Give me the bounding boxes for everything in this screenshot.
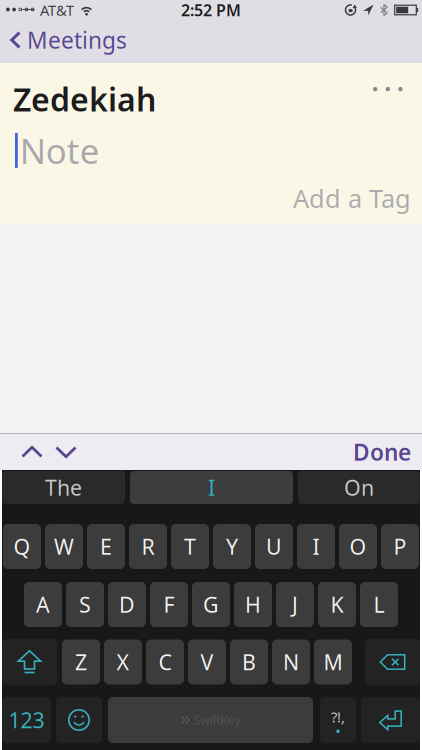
staticText: G (203, 590, 219, 619)
button[interactable]: I (130, 471, 293, 504)
button[interactable]: R (129, 524, 167, 569)
button[interactable]: J (276, 582, 314, 627)
button[interactable]: Delete (365, 639, 420, 685)
staticText: Note (20, 127, 100, 173)
button[interactable]: Y (213, 524, 251, 569)
staticText: 123 (8, 706, 44, 734)
staticText: The (45, 473, 82, 502)
button[interactable]: Done (353, 437, 422, 467)
staticText: T (184, 532, 196, 561)
button[interactable]: S (66, 582, 104, 627)
button[interactable]: C (146, 639, 184, 684)
button[interactable]: Next field (44, 445, 78, 458)
button[interactable]: Return (361, 697, 420, 743)
button[interactable]: B (230, 639, 268, 684)
staticText: I (208, 473, 215, 502)
button[interactable]: W (45, 524, 83, 569)
button[interactable]: O (339, 524, 377, 569)
staticText: E (100, 532, 112, 561)
staticText: Q (13, 532, 30, 561)
button[interactable]: T (171, 524, 209, 569)
staticText: D (119, 590, 135, 619)
button[interactable]: V (188, 639, 226, 684)
staticText: J (292, 590, 298, 619)
staticText: On (344, 473, 374, 502)
button[interactable]: H (234, 582, 272, 627)
button[interactable]: G (192, 582, 230, 627)
staticText: R (141, 532, 154, 561)
button[interactable]: Meetings (0, 25, 127, 58)
button[interactable]: X (104, 639, 142, 684)
staticText: H (245, 590, 261, 619)
staticText: P (393, 532, 406, 561)
staticText: Meetings (27, 25, 127, 55)
staticText: N (283, 648, 299, 676)
button[interactable]: A (24, 582, 62, 627)
staticText: AT&T (40, 0, 74, 20)
staticText: M (323, 648, 342, 676)
staticText: SwiftKey (193, 712, 240, 728)
button[interactable]: M (314, 639, 352, 684)
staticText: X (116, 648, 129, 676)
button[interactable]: I (297, 524, 335, 569)
button[interactable]: Add a Tag (293, 181, 422, 215)
staticText: A (36, 590, 50, 619)
button[interactable]: D (108, 582, 146, 627)
button[interactable]: Punctuation (320, 697, 356, 743)
button[interactable]: Previous field (0, 445, 44, 458)
button[interactable]: More options (373, 78, 422, 92)
staticText: Done (353, 437, 411, 467)
staticText: 2:52 PM (181, 0, 241, 21)
staticText: I (312, 532, 319, 561)
button[interactable]: N (272, 639, 310, 684)
staticText: W (54, 532, 74, 561)
staticText: C (158, 648, 171, 676)
button[interactable]: E (87, 524, 125, 569)
button[interactable]: P (381, 524, 419, 569)
button[interactable]: Numbers (2, 697, 51, 743)
staticText: Add a Tag (293, 181, 411, 215)
button[interactable]: L (360, 582, 398, 627)
staticText: Zedekiah (13, 78, 156, 120)
button[interactable]: Z (62, 639, 100, 684)
staticText: O (349, 532, 366, 561)
staticText: S (79, 590, 91, 619)
button[interactable]: Q (3, 524, 41, 569)
button[interactable]: The (2, 471, 125, 504)
staticText: V (200, 648, 213, 676)
staticText: K (330, 590, 343, 619)
button[interactable]: F (150, 582, 188, 627)
staticText: ?!, (331, 707, 345, 726)
button[interactable]: On (298, 471, 420, 504)
staticText: B (242, 648, 256, 676)
button[interactable]: K (318, 582, 356, 627)
staticText: Y (226, 532, 238, 561)
staticText: L (373, 590, 384, 619)
staticText: F (163, 590, 174, 619)
staticText: U (266, 532, 282, 561)
button[interactable]: Emoji (56, 697, 102, 743)
button[interactable]: U (255, 524, 293, 569)
button[interactable]: Shift (2, 639, 57, 685)
staticText: Z (75, 648, 87, 676)
